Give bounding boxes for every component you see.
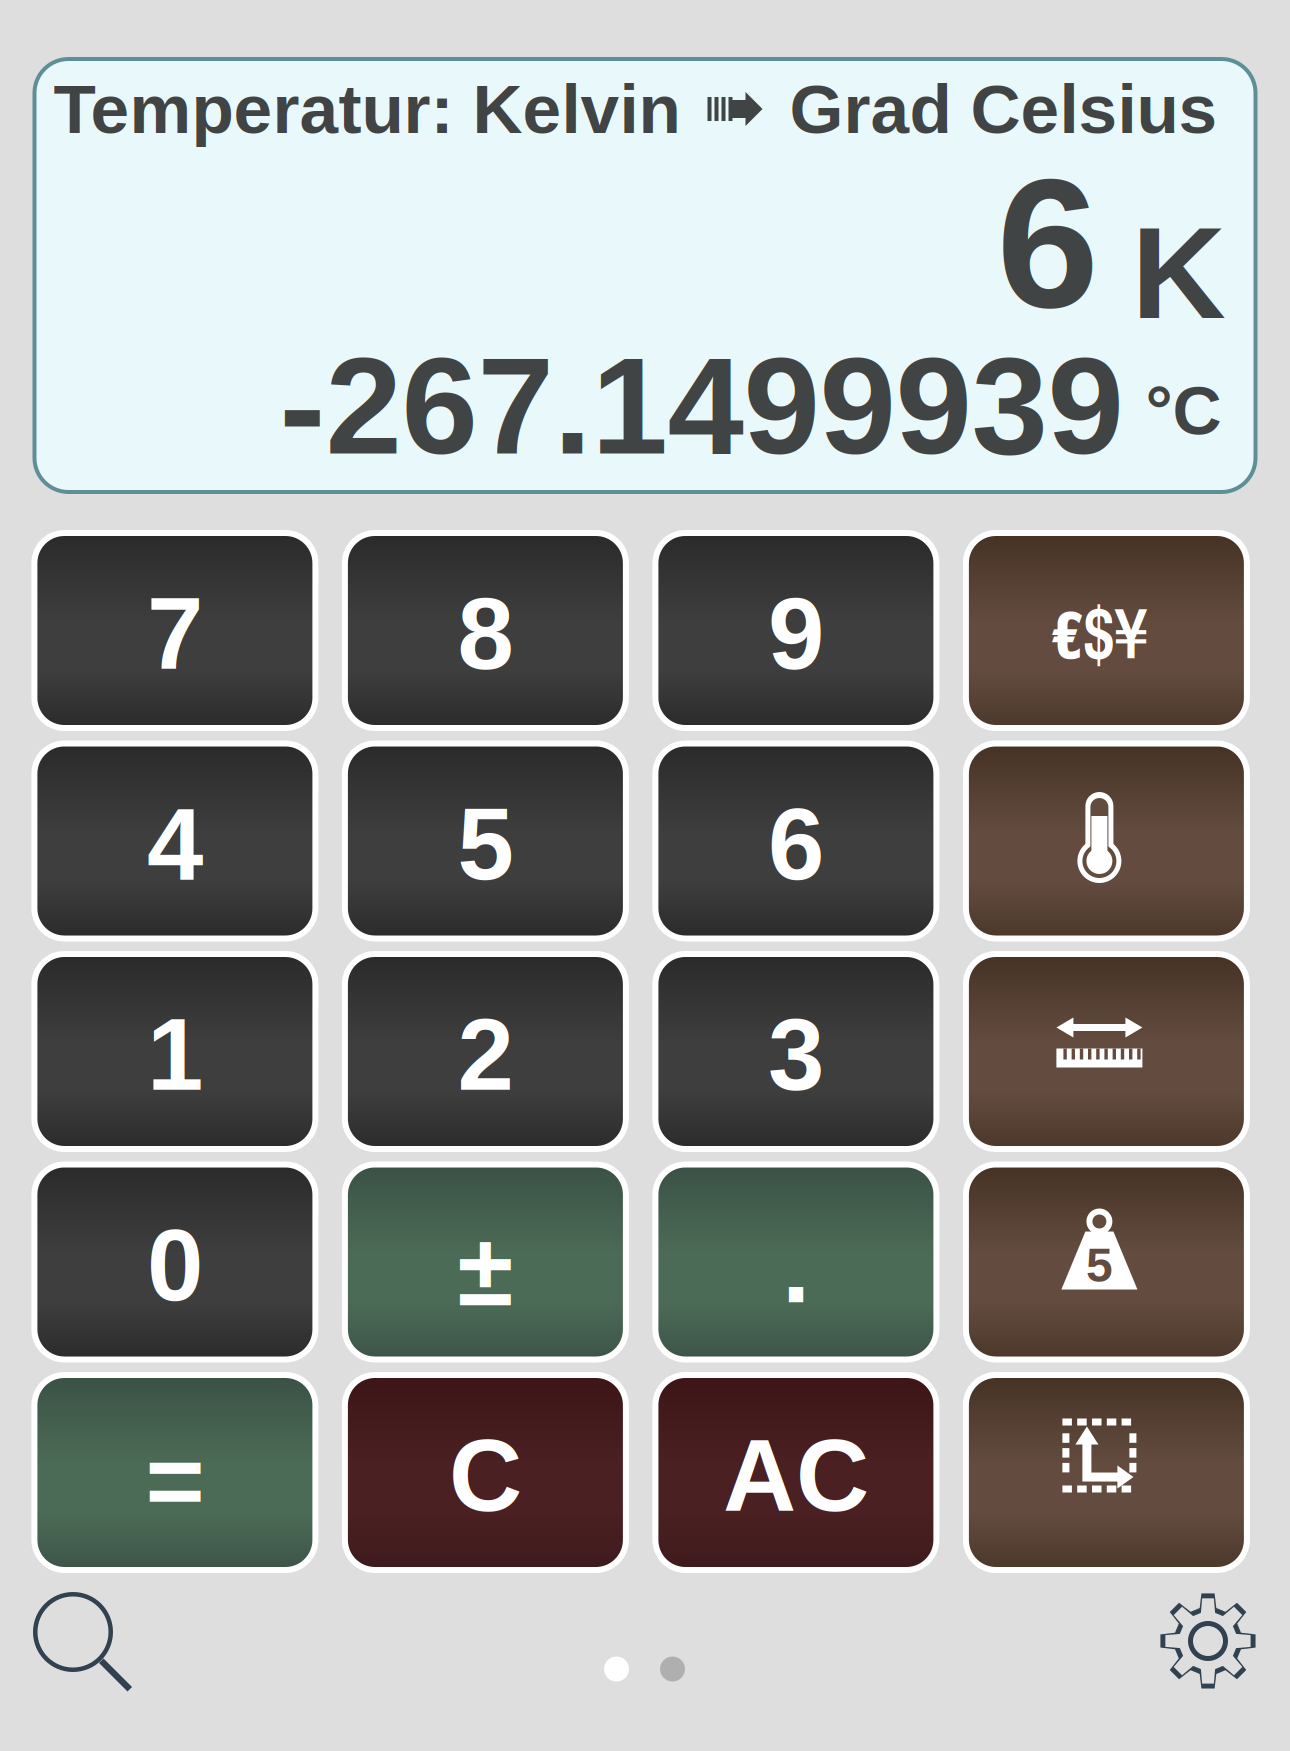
button[interactable]: 0 (34, 1164, 315, 1359)
button[interactable]: Length (966, 954, 1247, 1149)
staticText: Temperatur: Kelvin (53, 70, 680, 148)
staticText: 5 (1086, 1238, 1113, 1292)
button[interactable]: 8 (345, 533, 626, 728)
staticText: AC (723, 1419, 869, 1532)
button[interactable]: Temperature (966, 743, 1247, 938)
button[interactable]: 6 (655, 743, 936, 938)
button[interactable]: Weight (966, 1164, 1247, 1359)
button[interactable]: 9 (655, 533, 936, 728)
button[interactable]: 4 (34, 743, 315, 938)
button[interactable]: ± (345, 1164, 626, 1359)
staticText: 4 (147, 787, 203, 901)
staticText: . (782, 1210, 810, 1324)
staticText: 7 (147, 577, 203, 690)
button[interactable]: Page 1 of 2 (604, 1600, 689, 1681)
button[interactable]: 2 (345, 954, 626, 1149)
button[interactable]: Search (0, 1590, 133, 1692)
button[interactable]: AC (655, 1375, 936, 1570)
staticText: °C (1145, 373, 1221, 449)
staticText: ± (457, 1213, 513, 1327)
button[interactable]: = (34, 1375, 315, 1570)
button[interactable]: Settings (1160, 1593, 1290, 1689)
button[interactable]: Area (966, 1375, 1247, 1570)
staticText: 1 (147, 998, 203, 1111)
staticText: K (1131, 200, 1225, 346)
staticText: 0 (147, 1208, 203, 1322)
button[interactable]: 5 (345, 743, 626, 938)
staticText: = (145, 1425, 204, 1538)
button[interactable]: 3 (655, 954, 936, 1149)
staticText: 5 (457, 787, 513, 901)
button[interactable]: 1 (34, 954, 315, 1149)
button[interactable]: 7 (34, 533, 315, 728)
staticText: 3 (768, 998, 824, 1111)
staticText: 9 (768, 577, 824, 690)
button[interactable]: . (655, 1164, 936, 1359)
staticText: €$¥ (1052, 582, 1147, 679)
button[interactable]: C (345, 1375, 626, 1570)
staticText: 6 (768, 787, 824, 901)
staticText: 6 (996, 140, 1098, 346)
staticText: 2 (457, 998, 513, 1111)
staticText: 8 (457, 577, 513, 690)
staticText: Grad Celsius (789, 70, 1217, 148)
staticText: -267.1499939 (279, 329, 1123, 483)
staticText: C (449, 1419, 522, 1532)
button[interactable]: Currency (966, 533, 1247, 728)
